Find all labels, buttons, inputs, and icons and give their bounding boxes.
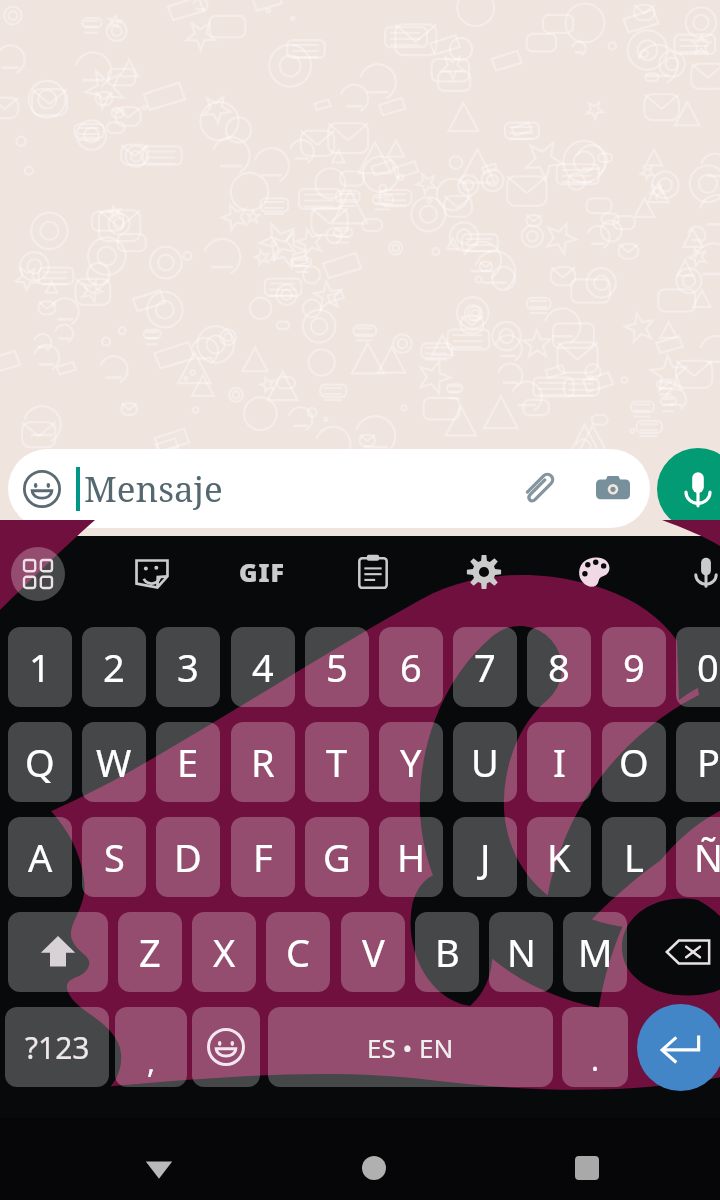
staticText: V [362, 926, 385, 978]
staticText: E [177, 736, 199, 788]
button[interactable]: 7 [453, 627, 517, 707]
staticText: Y [400, 736, 422, 788]
staticText: J [480, 831, 491, 883]
staticText: Mensaje [84, 465, 223, 513]
button[interactable]: N [489, 912, 553, 992]
button[interactable]: Recent apps [539, 1127, 635, 1200]
button[interactable]: Period [562, 1007, 628, 1087]
staticText: , [147, 1041, 156, 1082]
staticText: W [96, 736, 132, 788]
button[interactable]: K [527, 817, 591, 897]
button[interactable]: R [231, 722, 295, 802]
staticText: N [507, 926, 536, 978]
staticText: F [253, 831, 273, 883]
staticText: S [104, 831, 125, 883]
button[interactable]: Emoji [8, 449, 650, 528]
button[interactable]: Settings [454, 542, 514, 602]
button[interactable]: Home [326, 1127, 422, 1200]
staticText: Z [139, 926, 161, 978]
button[interactable]: Symbols [5, 1007, 109, 1087]
button[interactable]: Camera [575, 449, 650, 528]
staticText: T [326, 736, 348, 788]
staticText: O [619, 736, 649, 788]
button[interactable]: W [82, 722, 146, 802]
button[interactable]: H [379, 817, 443, 897]
button[interactable]: Z [118, 912, 182, 992]
button[interactable]: Emoji [8, 449, 76, 528]
button[interactable]: P [676, 722, 720, 802]
button[interactable]: Y [379, 722, 443, 802]
button[interactable]: 0 [676, 627, 720, 707]
staticText: U [471, 736, 499, 788]
staticText: ?123 [25, 1027, 90, 1068]
button[interactable]: Enter [637, 1004, 720, 1091]
button[interactable]: 4 [231, 627, 295, 707]
staticText: X [213, 926, 236, 978]
button[interactable]: Voice message [657, 448, 720, 530]
button[interactable]: 8 [527, 627, 591, 707]
button[interactable]: E [156, 722, 220, 802]
button[interactable]: Attach [500, 449, 575, 528]
button[interactable]: 3 [156, 627, 220, 707]
staticText: R [251, 736, 275, 788]
staticText: H [397, 831, 426, 883]
staticText: 0 [697, 641, 719, 693]
button[interactable]: 6 [379, 627, 443, 707]
button[interactable]: S [82, 817, 146, 897]
staticText: Q [25, 736, 55, 788]
staticText: A [28, 831, 53, 883]
button[interactable]: Apps [11, 547, 65, 601]
button[interactable]: U [453, 722, 517, 802]
staticText: 4 [252, 641, 274, 693]
button[interactable]: Stickers [122, 542, 182, 602]
staticText: M [578, 926, 613, 978]
button[interactable]: V [341, 912, 405, 992]
button[interactable]: M [563, 912, 627, 992]
staticText: 7 [474, 641, 496, 693]
staticText: 5 [326, 641, 348, 693]
button[interactable]: 2 [82, 627, 146, 707]
staticText: G [323, 831, 351, 883]
staticText: . [591, 1039, 600, 1080]
staticText: 8 [548, 641, 570, 693]
button[interactable]: I [527, 722, 591, 802]
button[interactable]: T [305, 722, 369, 802]
button[interactable]: Space [268, 1007, 553, 1087]
button[interactable]: F [231, 817, 295, 897]
button[interactable]: L [602, 817, 666, 897]
staticText: 6 [400, 641, 422, 693]
button[interactable]: G [305, 817, 369, 897]
staticText: ES • EN [367, 1030, 454, 1065]
button[interactable]: Clipboard [343, 542, 403, 602]
button[interactable]: Q [8, 722, 72, 802]
button[interactable]: J [453, 817, 517, 897]
button[interactable]: Shift [8, 912, 108, 992]
button[interactable]: X [192, 912, 256, 992]
button[interactable]: Emoji keyboard [192, 1007, 260, 1087]
staticText: P [697, 736, 720, 788]
button[interactable]: C [266, 912, 330, 992]
button[interactable]: D [156, 817, 220, 897]
button[interactable]: Theme [565, 542, 625, 602]
staticText: D [174, 831, 202, 883]
staticText: C [286, 926, 311, 978]
staticText: L [624, 831, 644, 883]
button[interactable]: 1 [8, 627, 72, 707]
staticText: I [553, 736, 566, 788]
button[interactable]: Voice input [676, 542, 720, 602]
button[interactable]: B [415, 912, 479, 992]
button[interactable]: Backspace [638, 912, 720, 992]
button[interactable]: GIF [228, 542, 296, 602]
staticText: K [547, 831, 571, 883]
button[interactable]: 9 [602, 627, 666, 707]
staticText: 2 [103, 641, 125, 693]
staticText: 3 [177, 641, 199, 693]
button[interactable]: Ñ [676, 817, 720, 897]
staticText: Ñ [694, 831, 720, 883]
button[interactable]: O [602, 722, 666, 802]
button[interactable]: A [8, 817, 72, 897]
button[interactable]: Comma [115, 1007, 187, 1087]
button[interactable]: Back [111, 1127, 207, 1200]
button[interactable]: 5 [305, 627, 369, 707]
staticText: B [435, 926, 460, 978]
